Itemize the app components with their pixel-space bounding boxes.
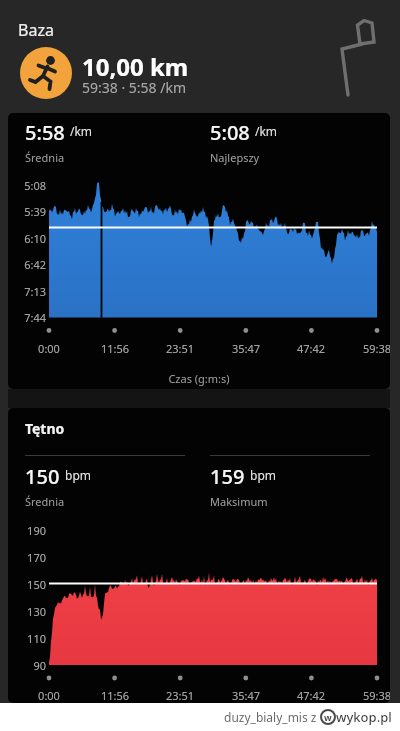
staticText: 5:58: [25, 119, 65, 146]
staticText: 150: [8, 577, 46, 592]
button[interactable]: 5:58: [8, 113, 390, 389]
staticText: 90: [8, 658, 46, 673]
staticText: 6:10: [8, 231, 46, 246]
staticText: 47:42: [288, 341, 334, 356]
staticText: 6:42: [8, 257, 46, 272]
staticText: Czas (g:m:s): [8, 371, 390, 386]
staticText: Tętno: [25, 419, 65, 438]
staticText: 59:38: [354, 688, 390, 703]
staticText: Średnia: [25, 150, 65, 165]
staticText: w: [324, 711, 332, 723]
button[interactable]: [328, 8, 392, 100]
staticText: 0:00: [26, 688, 72, 703]
staticText: 7:13: [8, 284, 46, 299]
staticText: 110: [8, 631, 46, 646]
staticText: /km: [255, 123, 278, 139]
staticText: 23:51: [157, 688, 203, 703]
staticText: 7:44: [8, 310, 46, 325]
staticText: 5:39: [8, 204, 46, 219]
staticText: 23:51: [157, 341, 203, 356]
staticText: 11:56: [92, 688, 138, 703]
button[interactable]: 10,00 km: [20, 47, 292, 99]
button[interactable]: Tętno: [8, 408, 390, 703]
staticText: 10,00 km: [82, 50, 189, 83]
staticText: 150: [25, 463, 60, 490]
staticText: duzy_bialy_mis z: [224, 709, 320, 725]
staticText: /km: [70, 123, 93, 139]
staticText: 5:08: [8, 178, 46, 193]
staticText: 170: [8, 550, 46, 565]
staticText: 35:47: [223, 341, 269, 356]
staticText: 5:08: [210, 119, 250, 146]
staticText: 0:00: [26, 341, 72, 356]
staticText: 59:38: [354, 341, 390, 356]
staticText: Baza: [18, 19, 54, 41]
staticText: 190: [8, 523, 46, 538]
staticText: 47:42: [288, 688, 334, 703]
staticText: wykop.pl: [336, 708, 392, 726]
staticText: 159: [210, 463, 245, 490]
staticText: Najlepszy: [210, 150, 260, 165]
staticText: Maksimum: [210, 494, 268, 509]
staticText: 130: [8, 604, 46, 619]
staticText: 11:56: [92, 341, 138, 356]
staticText: bpm: [65, 467, 91, 483]
staticText: Średnia: [25, 494, 65, 509]
staticText: 59:38 · 5:58 /km: [82, 78, 187, 97]
staticText: bpm: [250, 467, 276, 483]
staticText: 35:47: [223, 688, 269, 703]
